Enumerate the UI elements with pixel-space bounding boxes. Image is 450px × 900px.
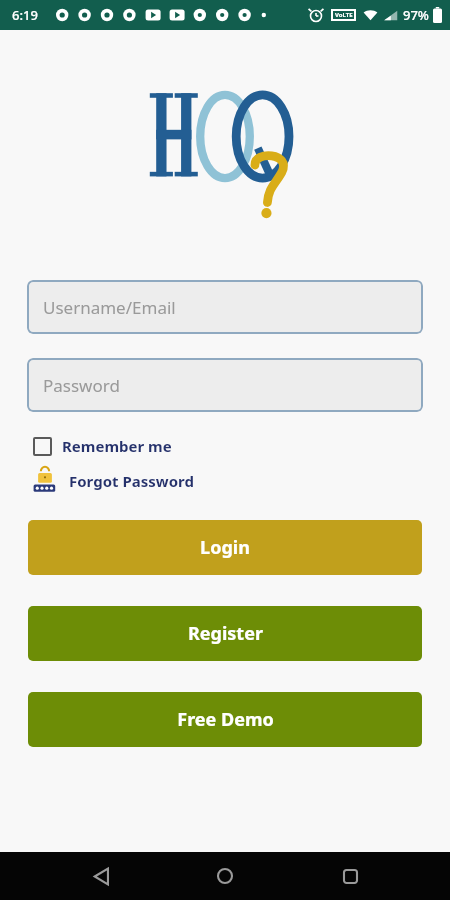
staticText: Forgot Password (69, 471, 194, 491)
button[interactable]: Password (27, 358, 423, 412)
button[interactable]: Forgot Password (33, 466, 204, 496)
button[interactable]: Remember me (33, 434, 182, 458)
button[interactable]: Register (28, 606, 422, 661)
staticText: 6:19 (12, 6, 38, 24)
staticText: Password (43, 374, 120, 397)
button[interactable]: Back (77, 852, 125, 900)
staticText: Username/Email (43, 296, 176, 319)
button[interactable]: Username/Email (27, 280, 423, 334)
staticText: Login (200, 535, 250, 560)
staticText: 97% (403, 6, 429, 24)
staticText: Free Demo (177, 707, 274, 732)
staticText: Register (188, 621, 263, 646)
button[interactable]: Free Demo (28, 692, 422, 747)
button[interactable]: Login (28, 520, 422, 575)
staticText: VoLTE (335, 11, 353, 19)
button[interactable]: Home (201, 852, 249, 900)
staticText: Remember me (62, 436, 172, 456)
button[interactable]: Recent apps (326, 852, 374, 900)
